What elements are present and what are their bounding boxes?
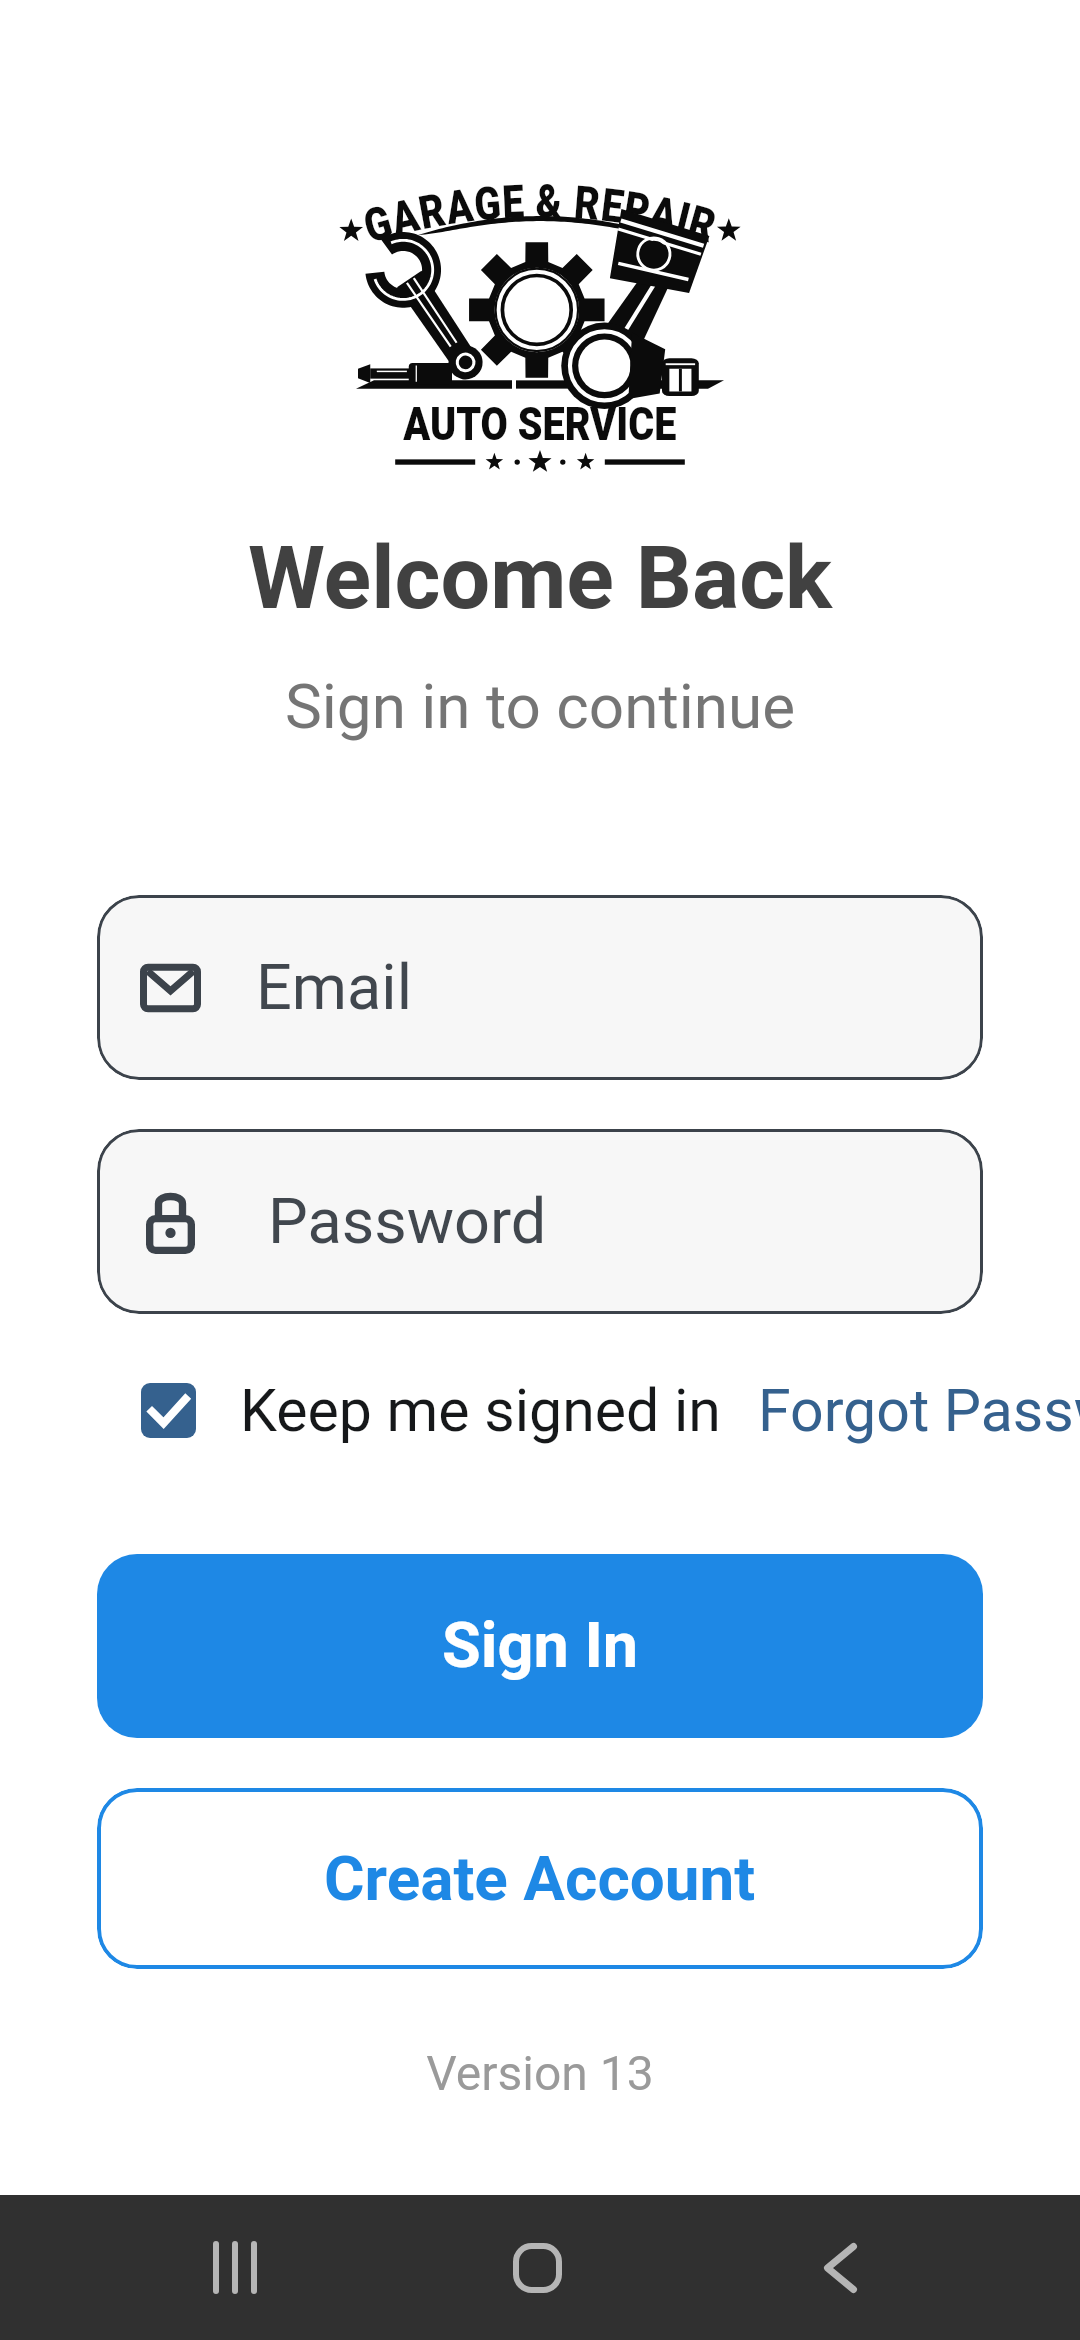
button[interactable]: Email (97, 895, 983, 1080)
button[interactable]: Keep me signed in (141, 1383, 196, 1438)
staticText: Welcome Back (0, 526, 1080, 629)
staticText: Email (256, 951, 412, 1025)
button[interactable]: Forgot Password (758, 1376, 1080, 1445)
staticText: Password (268, 1185, 547, 1259)
button[interactable]: Home (467, 2195, 607, 2340)
button[interactable]: Recent apps (165, 2195, 305, 2340)
staticText: Sign in to continue (0, 670, 1080, 743)
button[interactable]: Sign In (97, 1554, 983, 1738)
staticText: Version 13 (0, 2045, 1080, 2101)
button[interactable]: Create Account (97, 1788, 983, 1969)
staticText: Create Account (324, 1842, 756, 1915)
staticText: Keep me signed in (240, 1376, 721, 1445)
button[interactable]: Password (97, 1129, 983, 1314)
staticText: Sign In (442, 1609, 639, 1683)
button[interactable]: Back (770, 2195, 910, 2340)
